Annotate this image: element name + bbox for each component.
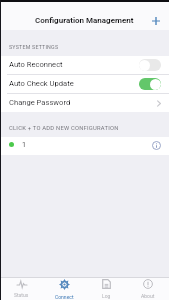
button[interactable]: Change Password bbox=[0, 94, 169, 112]
button[interactable]: Enabled bbox=[139, 78, 161, 90]
staticText: CLICK + TO ADD NEW CONFIGURATION bbox=[9, 125, 119, 132]
button[interactable]: Disabled bbox=[139, 59, 161, 71]
staticText: Log bbox=[102, 293, 111, 299]
button[interactable]: Log bbox=[85, 278, 127, 300]
staticText: Auto Check Update bbox=[9, 79, 74, 88]
button[interactable]: About bbox=[127, 278, 169, 300]
button[interactable]: Auto Check Update bbox=[0, 75, 169, 93]
staticText: Connect bbox=[55, 294, 74, 300]
staticText: Change Password bbox=[9, 98, 71, 107]
staticText: Status bbox=[14, 292, 29, 298]
button[interactable]: Status bbox=[0, 278, 43, 300]
button[interactable]: Connect bbox=[43, 278, 85, 300]
staticText: Configuration Management bbox=[35, 16, 134, 25]
staticText: Auto Reconnect bbox=[9, 60, 63, 69]
staticText: 1 bbox=[22, 140, 27, 148]
button[interactable]: Auto Reconnect bbox=[0, 56, 169, 74]
staticText: About bbox=[141, 293, 155, 299]
staticText: SYSTEM SETTINGS bbox=[9, 44, 59, 50]
button[interactable]: Add configuration bbox=[147, 12, 164, 29]
button[interactable]: 1 bbox=[0, 137, 169, 155]
